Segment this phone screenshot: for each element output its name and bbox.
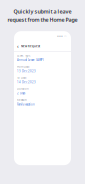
- staticText: Family vacation: [17, 103, 35, 106]
- staticText: ▪▪▪: [57, 35, 63, 38]
- staticText: New Request: [21, 44, 40, 48]
- staticText: ‹: [17, 43, 19, 50]
- staticText: Quickly submit a leave: [13, 8, 71, 15]
- staticText: Leave Type: [17, 54, 31, 57]
- staticText: From Date: [17, 65, 30, 68]
- staticText: To Date: [17, 76, 27, 79]
- button[interactable]: ‹: [14, 41, 71, 51]
- staticText: Reason: [17, 98, 27, 102]
- staticText: 14 Dec 2023: [17, 80, 36, 84]
- staticText: Duration: [17, 87, 29, 90]
- button[interactable]: To Date: [17, 76, 68, 84]
- staticText: 2 Days: [17, 92, 25, 95]
- staticText: 13 Dec 2023: [17, 69, 36, 73]
- button[interactable]: Leave Type: [17, 54, 68, 62]
- staticText: Annual Leave (AWP): [17, 58, 44, 62]
- button[interactable]: From Date: [17, 65, 68, 73]
- button[interactable]: Duration: [17, 87, 68, 95]
- staticText: ▭: [64, 35, 67, 38]
- button[interactable]: Reason: [17, 98, 68, 106]
- staticText: request from the Home Page: [7, 16, 77, 23]
